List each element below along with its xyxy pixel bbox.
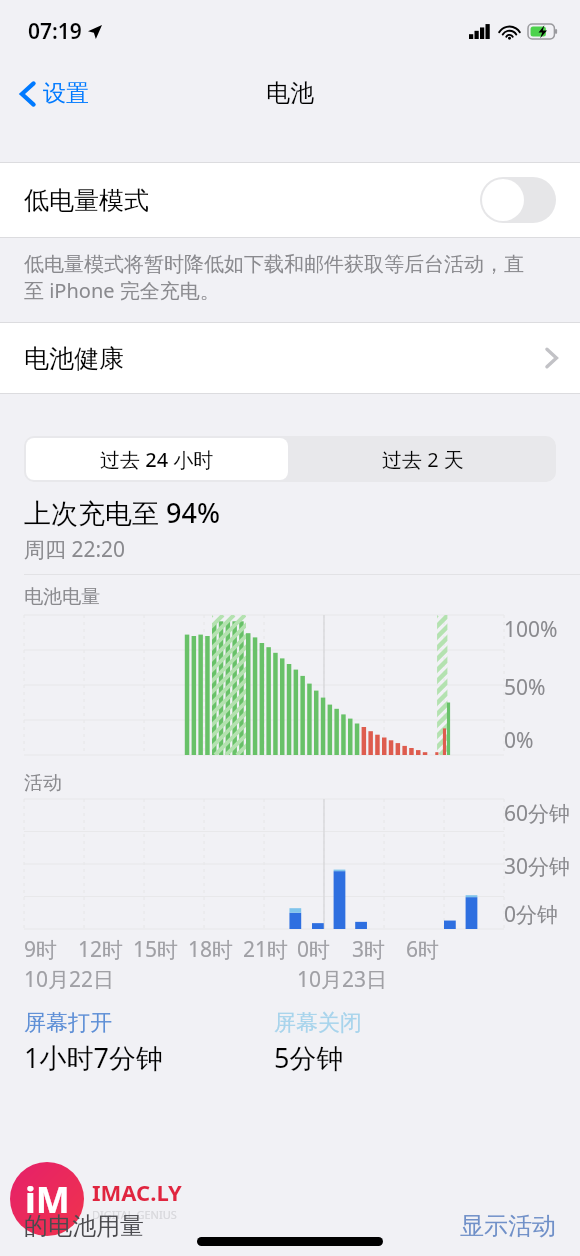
staticText: 3时: [352, 935, 386, 964]
button[interactable]: 设置: [14, 73, 95, 114]
staticText: 5分钟: [274, 1039, 344, 1076]
staticText: 10月23日: [297, 965, 388, 994]
staticText: 18时: [188, 935, 234, 964]
staticText: 10月22日: [24, 965, 115, 994]
staticText: 9时: [24, 935, 58, 964]
staticText: 至 iPhone 完全充电。: [24, 277, 220, 304]
staticText: 电池: [266, 78, 314, 108]
staticText: 0分钟: [504, 900, 559, 929]
staticText: 屏幕关闭: [274, 1009, 362, 1037]
staticText: 上次充电至 94%: [24, 494, 220, 531]
staticText: 低电量模式将暂时降低如下载和邮件获取等后台活动，直: [24, 252, 524, 277]
staticText: 6时: [406, 935, 440, 964]
staticText: 30分钟: [504, 852, 571, 881]
staticText: 60分钟: [504, 799, 571, 828]
staticText: DIGITAL GENIUS: [92, 1207, 177, 1222]
staticText: 0时: [297, 935, 331, 964]
button[interactable]: 电池健康: [0, 323, 580, 393]
staticText: 1小时7分钟: [24, 1039, 163, 1076]
button[interactable]: 低电量模式: [0, 163, 580, 237]
button[interactable]: 的电池用量: [24, 1211, 144, 1241]
staticText: 电池健康: [24, 343, 124, 374]
staticText: 低电量模式: [24, 185, 149, 216]
staticText: iM: [25, 1175, 70, 1224]
staticText: 100%: [504, 615, 558, 644]
button[interactable]: 显示活动: [460, 1211, 556, 1241]
staticText: 0%: [504, 726, 534, 755]
button[interactable]: 过去 24 小时: [26, 438, 288, 480]
other: 低电量模式开关: [480, 177, 556, 223]
staticText: 50%: [504, 673, 546, 702]
staticText: 21时: [243, 935, 289, 964]
staticText: 电池电量: [24, 585, 100, 609]
staticText: 12时: [78, 935, 124, 964]
staticText: 周四 22:20: [24, 535, 126, 564]
staticText: 的电池用量: [24, 1211, 144, 1241]
staticText: 过去 24 小时: [100, 446, 214, 473]
staticText: 显示活动: [460, 1211, 556, 1241]
staticText: IMAC.LY: [92, 1177, 182, 1207]
staticText: 屏幕打开: [24, 1009, 112, 1037]
staticText: 活动: [24, 771, 62, 795]
staticText: 设置: [43, 79, 89, 108]
button[interactable]: 过去 2 天: [290, 436, 556, 482]
staticText: 15时: [133, 935, 179, 964]
staticText: 过去 2 天: [382, 446, 464, 473]
staticText: 07:19: [28, 17, 82, 46]
